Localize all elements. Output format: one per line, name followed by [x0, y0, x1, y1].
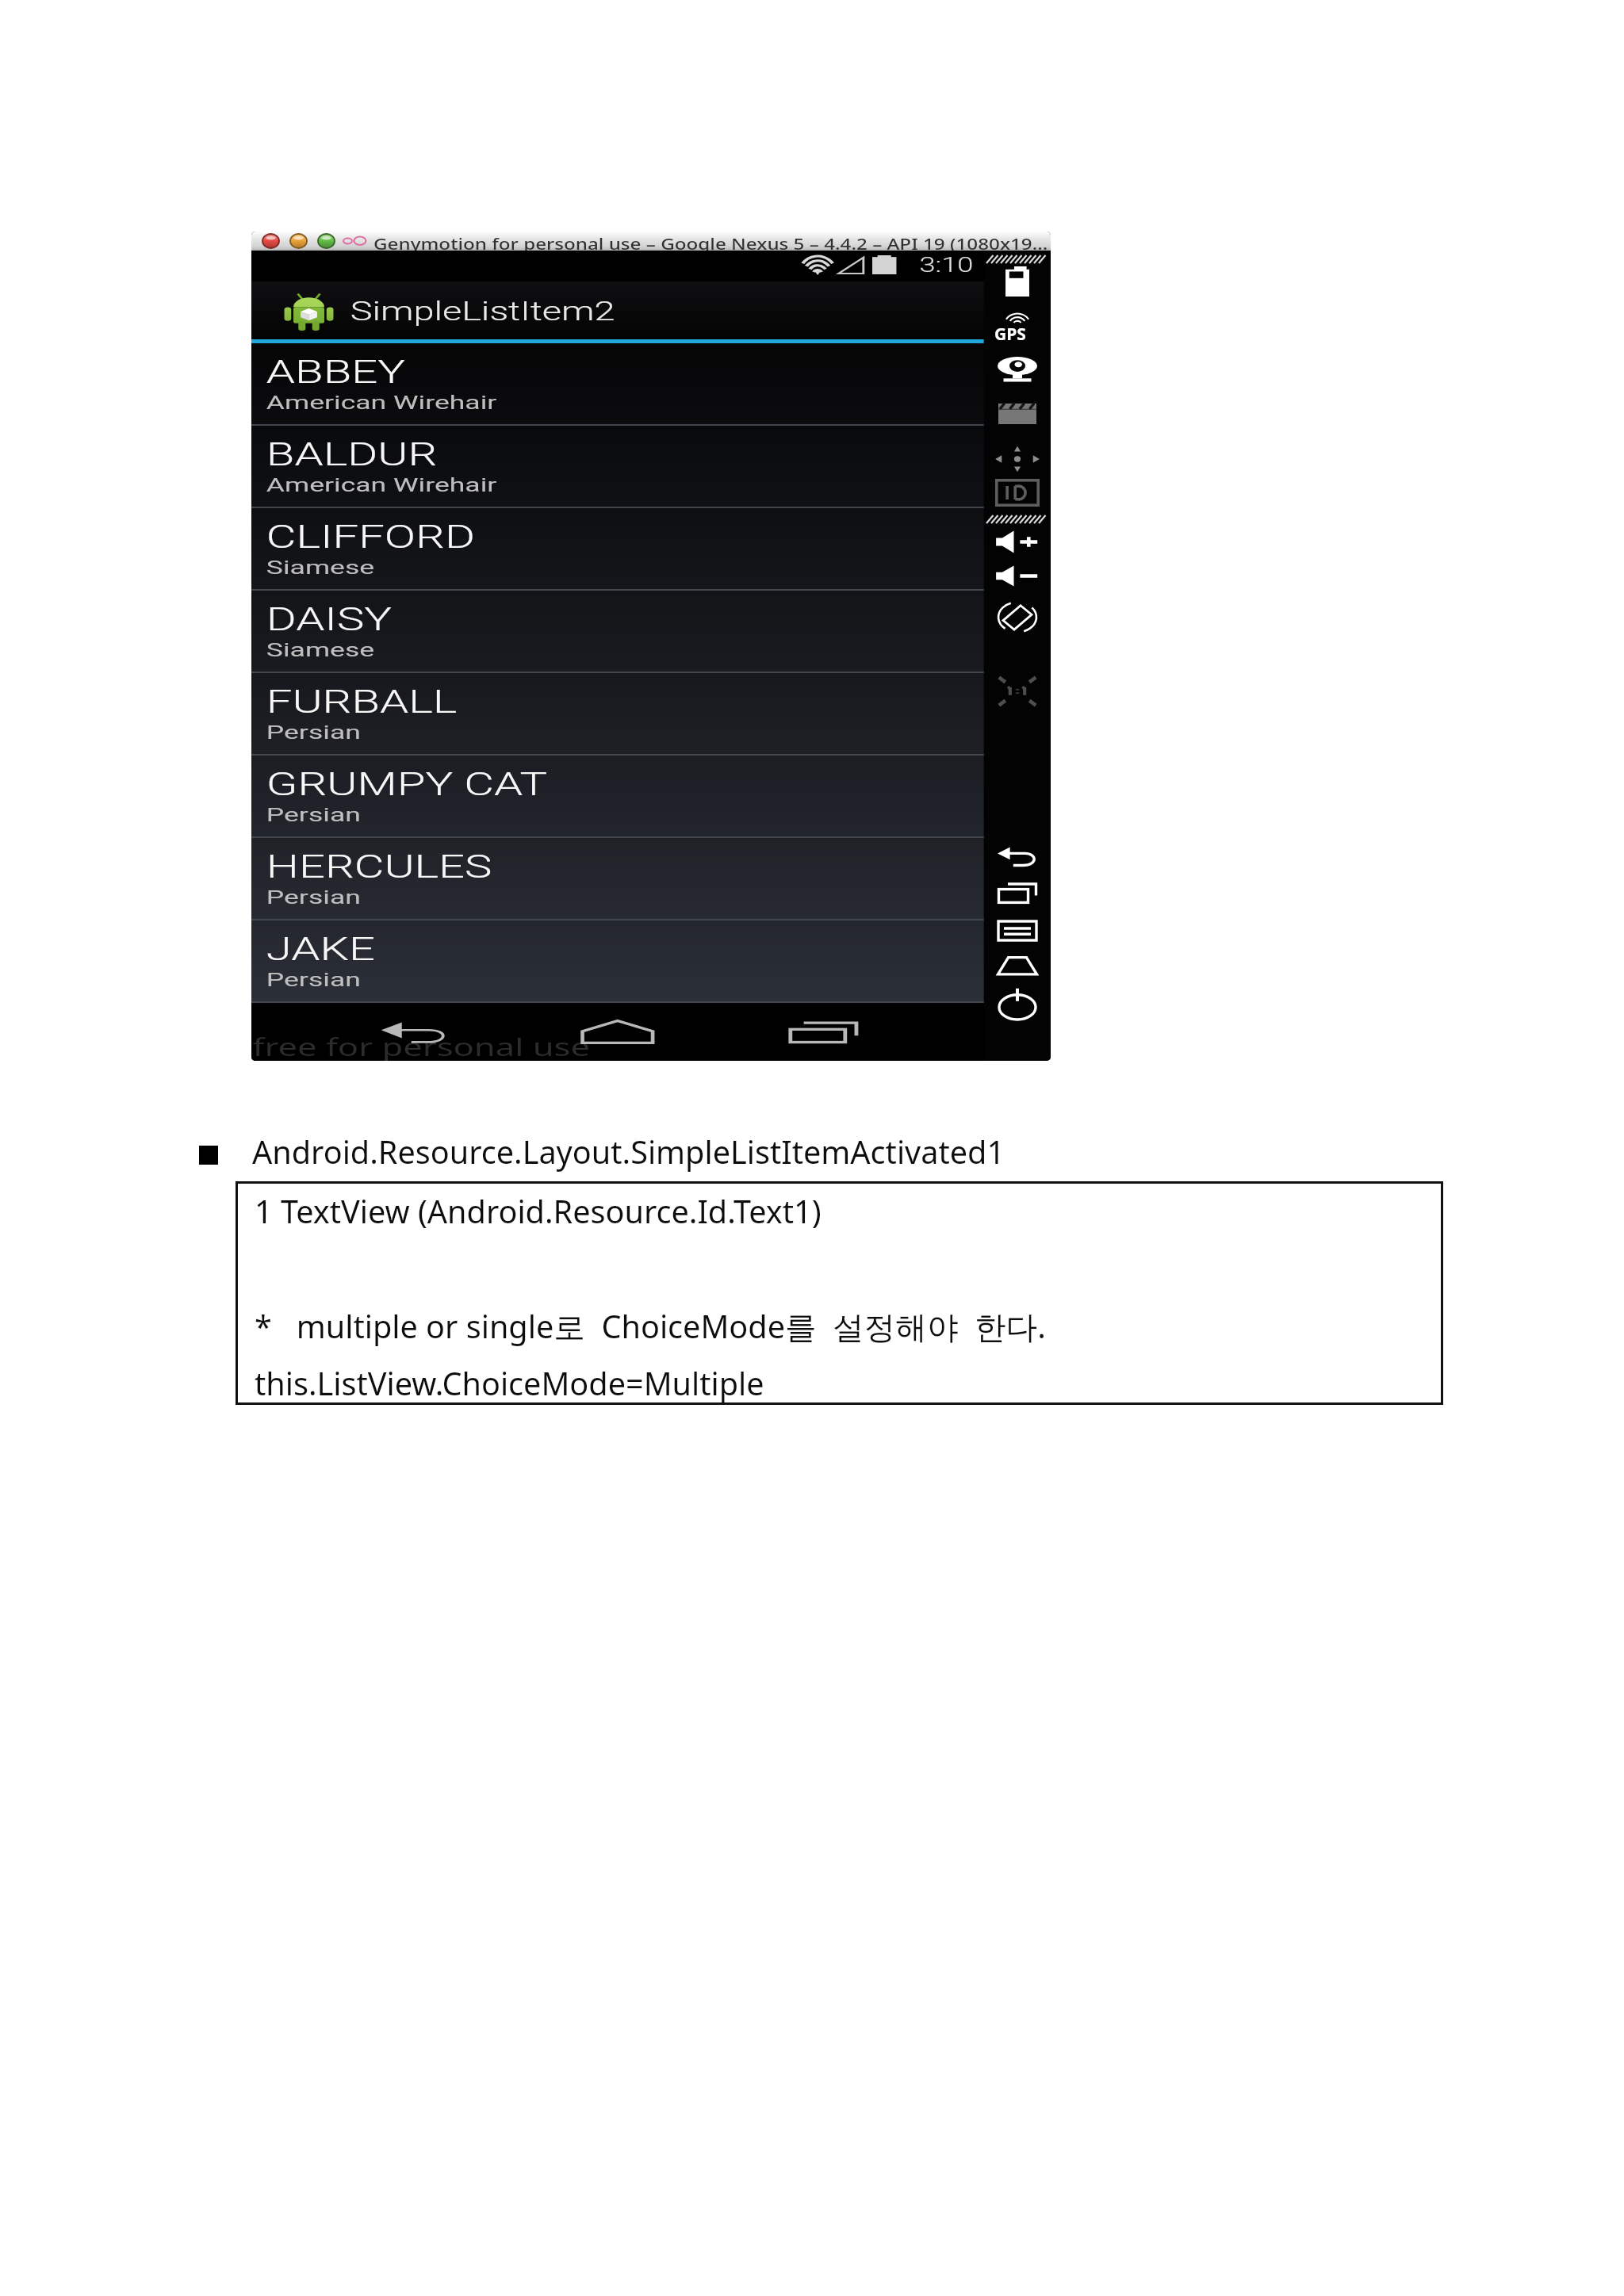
button[interactable]: FURBALL — [251, 673, 984, 756]
button[interactable]: Close window — [262, 234, 279, 248]
button[interactable]: Identifiers — [995, 479, 1040, 507]
staticText: Persian — [266, 968, 362, 991]
button[interactable]: Recent apps — [771, 1013, 876, 1050]
staticText: Persian — [266, 803, 362, 826]
button[interactable]: Volume up — [995, 530, 1040, 554]
button[interactable]: Actual size — [996, 675, 1039, 707]
button[interactable]: Back — [997, 847, 1038, 869]
staticText: BALDUR — [266, 436, 438, 473]
staticText: FURBALL — [266, 683, 457, 721]
staticText: HERCULES — [266, 848, 493, 886]
staticText: Siamese — [266, 638, 374, 661]
staticText: * multiple or single로 ChoiceMode를 설정해야 한… — [255, 1305, 1046, 1348]
staticText: ABBEY — [266, 354, 405, 391]
button[interactable]: Menu — [998, 919, 1037, 943]
staticText: GRUMPY CAT — [266, 766, 548, 803]
staticText: Persian — [266, 721, 362, 744]
button[interactable]: Battery — [1004, 266, 1031, 297]
button[interactable]: GRUMPY CAT — [251, 756, 984, 838]
button[interactable]: Power — [999, 988, 1036, 1020]
staticText: American Wirehair — [266, 391, 498, 414]
staticText: Persian — [266, 886, 362, 909]
button[interactable]: Home — [997, 955, 1038, 976]
button[interactable]: Maximise window — [318, 234, 335, 248]
staticText: Genymotion for personal use – Google Nex… — [373, 233, 1048, 252]
button[interactable]: Separator — [994, 515, 1040, 523]
button[interactable]: Rotate — [998, 601, 1037, 633]
button[interactable]: HERCULES — [251, 838, 984, 920]
button[interactable]: Camera — [998, 357, 1037, 385]
staticText: 3:10 — [919, 254, 973, 277]
button[interactable]: CLIFFORD — [251, 508, 984, 591]
button[interactable]: JAKE — [251, 920, 984, 1003]
button[interactable]: BALDUR — [251, 426, 984, 508]
button[interactable]: Recent apps — [998, 882, 1037, 905]
button[interactable]: Network — [994, 255, 1040, 263]
staticText: American Wirehair — [266, 473, 498, 496]
staticText: SimpleListItem2 — [350, 297, 616, 327]
button[interactable]: Minimise window — [290, 234, 307, 248]
staticText: GPS — [994, 323, 1026, 346]
button[interactable]: Video — [998, 400, 1036, 424]
staticText: free for personal use — [253, 1031, 591, 1061]
staticText: Android.Resource.Layout.SimpleListItemAc… — [252, 1131, 1005, 1173]
staticText: this.ListView.ChoiceMode=Multiple — [255, 1362, 764, 1405]
staticText: JAKE — [266, 931, 376, 968]
button[interactable]: ABBEY — [251, 343, 984, 426]
staticText: CLIFFORD — [266, 519, 476, 556]
button[interactable]: Back — [362, 1014, 465, 1050]
button[interactable]: Home — [563, 1012, 672, 1051]
button[interactable]: DAISY — [251, 591, 984, 673]
staticText: DAISY — [266, 601, 393, 638]
button[interactable]: D-pad — [994, 446, 1040, 473]
staticText: 1 TextView (Android.Resource.Id.Text1) — [255, 1190, 822, 1233]
button[interactable]: Volume down — [995, 564, 1040, 587]
button[interactable]: GPS — [1005, 313, 1030, 324]
staticText: Siamese — [266, 556, 374, 579]
